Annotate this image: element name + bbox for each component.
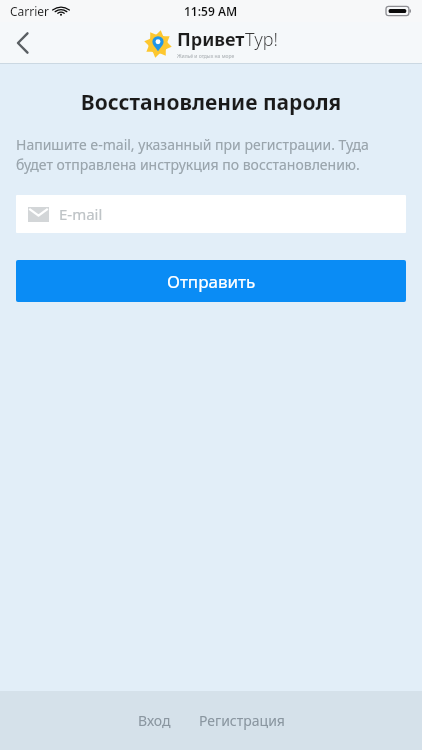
button[interactable]: Отправить [16, 260, 406, 302]
staticText: Напишите e-mail, указанный при регистрац… [16, 135, 406, 174]
button[interactable]: Вход [128, 703, 181, 738]
staticText: Вход [138, 711, 171, 730]
button[interactable]: Back [0, 22, 46, 64]
staticText: Жильё и отдых на море [177, 53, 235, 60]
button[interactable]: Регистрация [189, 703, 295, 738]
staticText: Тур! [245, 27, 278, 52]
staticText: E-mail [59, 204, 103, 224]
staticText: Carrier [10, 3, 50, 19]
staticText: Регистрация [199, 711, 285, 730]
staticText: 11:59 AM [184, 3, 238, 19]
staticText: Отправить [167, 270, 256, 293]
button[interactable]: E-mail [16, 195, 406, 233]
staticText: Привет [177, 27, 245, 52]
staticText: Восстановление пароля [0, 88, 422, 117]
